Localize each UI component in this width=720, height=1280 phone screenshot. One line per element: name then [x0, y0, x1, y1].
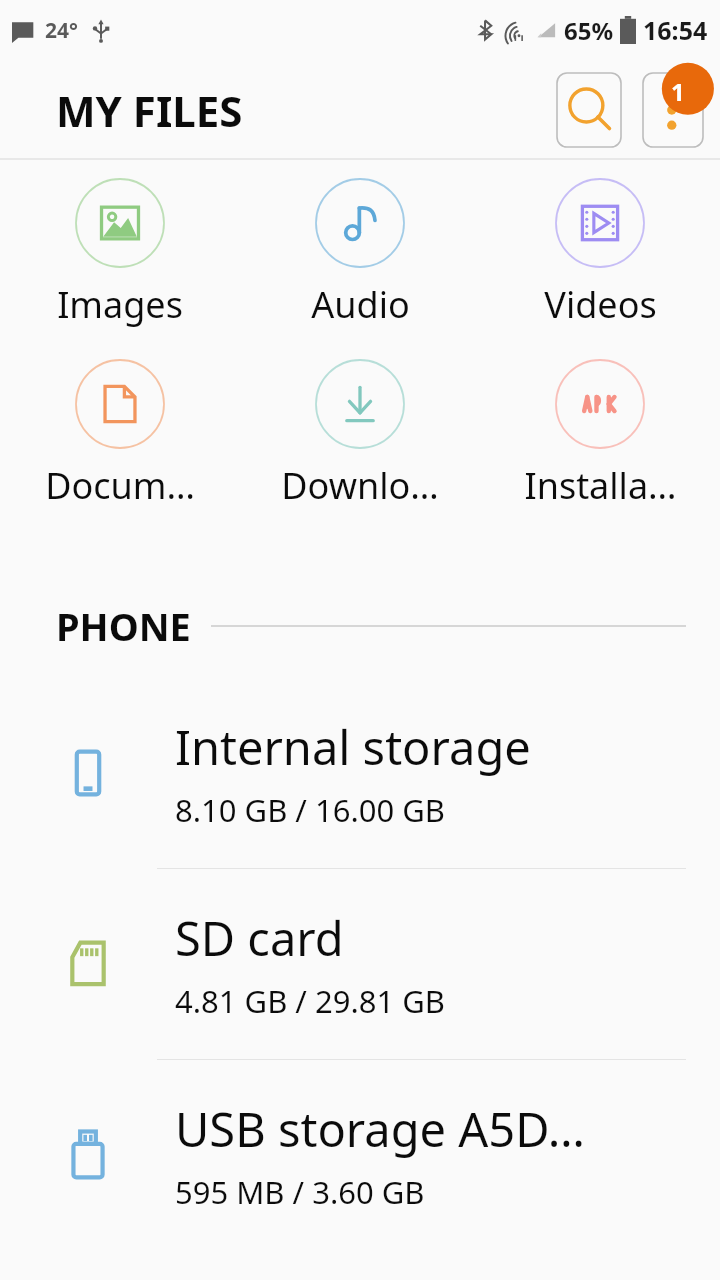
staticText: Videos — [544, 280, 657, 329]
button[interactable]: Images — [0, 174, 240, 333]
button[interactable]: USB storage A5D… — [0, 1060, 720, 1250]
button[interactable]: Docum… — [0, 355, 240, 514]
staticText: 595 MB / 3.60 GB — [175, 1171, 425, 1213]
staticText: Downlo… — [281, 461, 439, 510]
button[interactable]: Internal storage — [0, 678, 720, 868]
staticText: SD card — [175, 906, 344, 970]
button[interactable]: Search — [556, 72, 622, 148]
button[interactable]: Installa… — [480, 355, 720, 514]
staticText: Audio — [311, 280, 410, 329]
button[interactable]: More options — [642, 72, 704, 148]
staticText: USB storage A5D… — [175, 1097, 585, 1161]
staticText: Docum… — [45, 461, 195, 510]
staticText: PHONE — [56, 600, 191, 652]
staticText: 4.81 GB / 29.81 GB — [175, 980, 445, 1022]
staticText: Installa… — [524, 461, 677, 510]
button[interactable]: Audio — [240, 174, 480, 333]
staticText: 1 — [671, 75, 685, 108]
staticText: Internal storage — [175, 715, 531, 779]
staticText: MY FILES — [56, 82, 243, 139]
staticText: 8.10 GB / 16.00 GB — [175, 789, 445, 831]
button[interactable]: SD card — [0, 869, 720, 1059]
staticText: 65% — [564, 14, 614, 47]
staticText: 16:54 — [643, 13, 708, 47]
button[interactable]: Videos — [480, 174, 720, 333]
button[interactable]: Downlo… — [240, 355, 480, 514]
staticText: 24° — [45, 16, 78, 45]
staticText: Images — [57, 280, 183, 329]
